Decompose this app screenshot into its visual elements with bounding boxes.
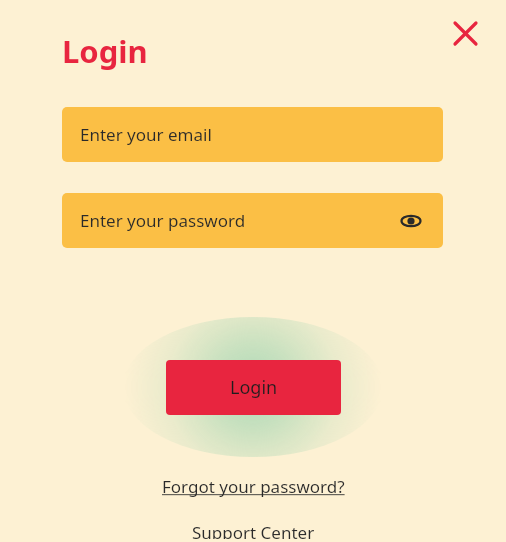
staticText: Login [62,30,148,72]
staticText: Enter your password [80,209,246,232]
button[interactable]: Close [444,12,486,54]
button[interactable]: Forgot your password? [156,472,351,501]
button[interactable]: Enter your email [62,107,443,162]
staticText: Forgot your password? [162,475,345,498]
staticText: Enter your email [80,123,212,146]
staticText: Support Center [192,521,315,539]
button[interactable]: Enter your password [62,193,443,248]
staticText: Login [230,375,278,400]
button[interactable]: Support Center [186,518,321,542]
button[interactable]: Show password [397,207,425,235]
button[interactable]: Login [166,360,341,415]
